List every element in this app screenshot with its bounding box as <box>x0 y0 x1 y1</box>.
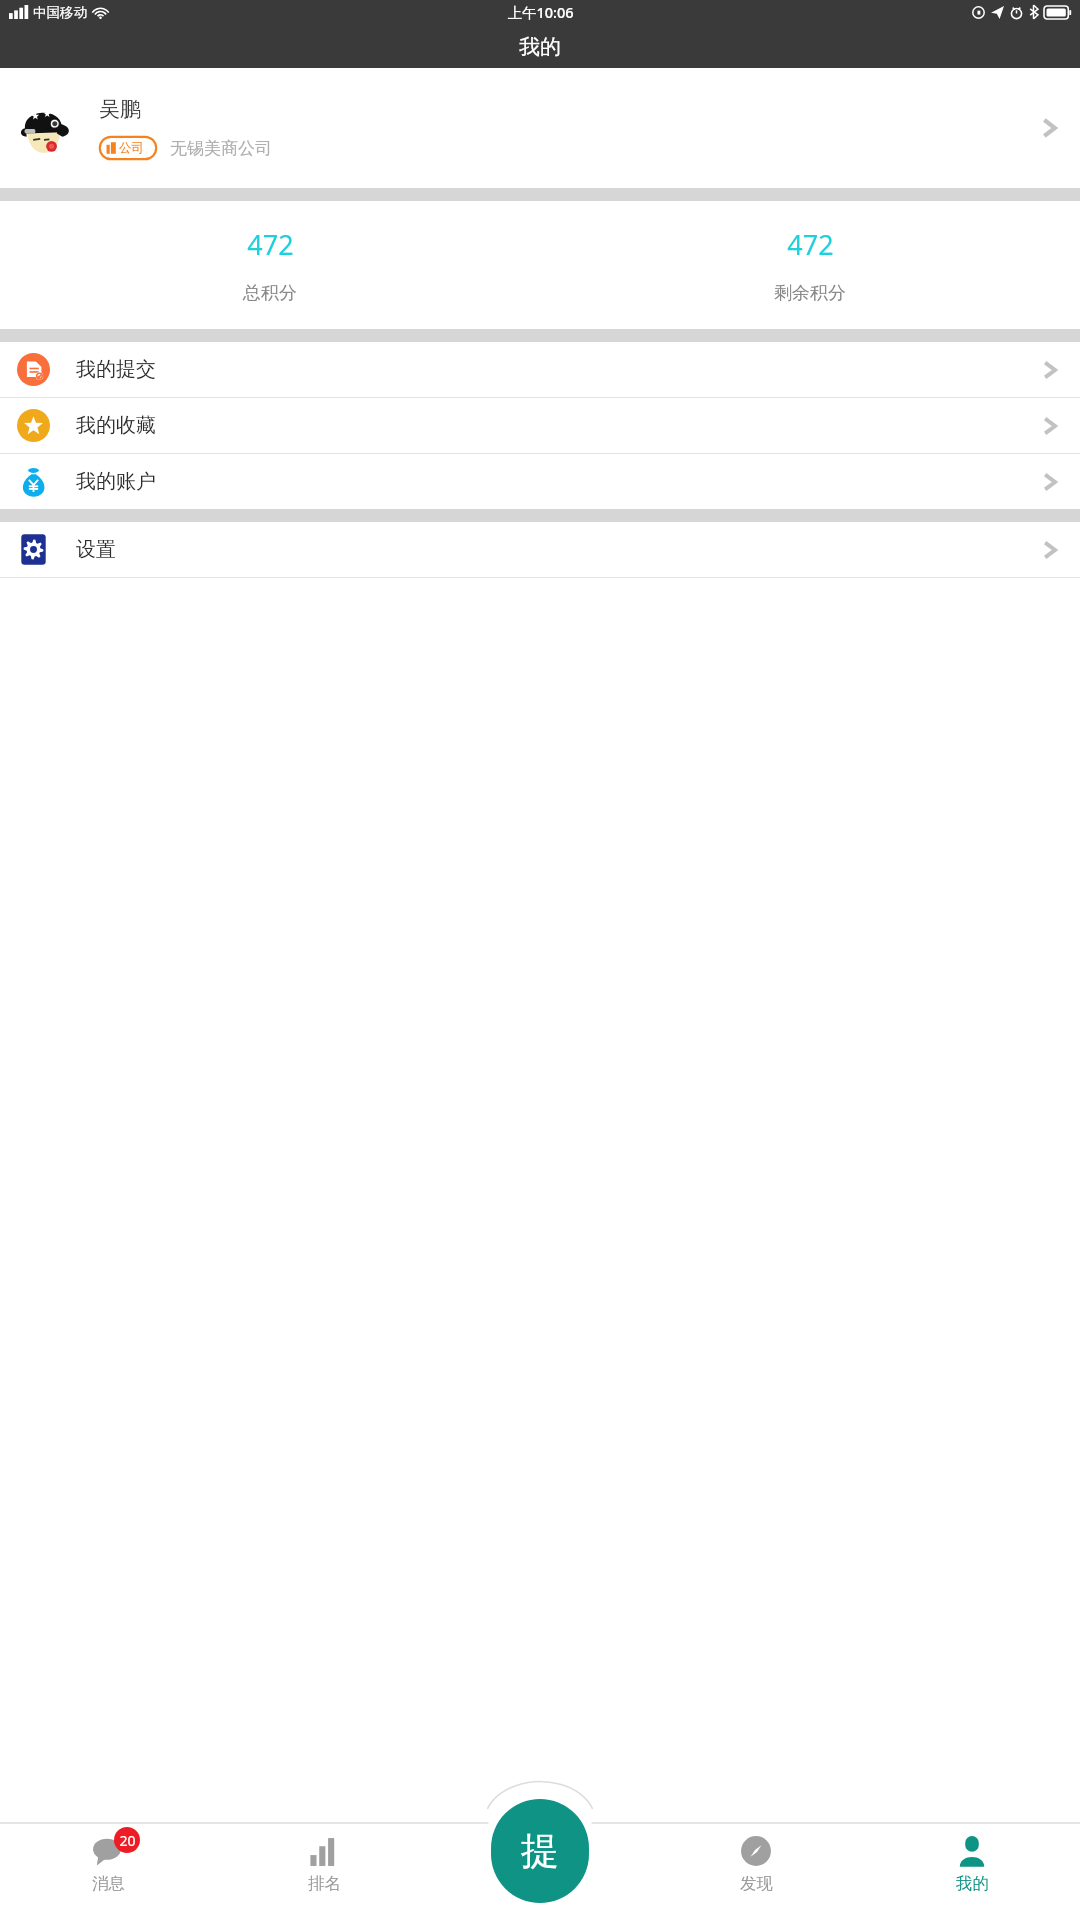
button[interactable]: 我的收藏 <box>0 398 1080 453</box>
staticText: 472 <box>247 226 294 263</box>
button[interactable]: 发现 <box>648 1823 864 1920</box>
staticText: 提 <box>521 1827 559 1875</box>
staticText: 我的提交 <box>76 357 156 382</box>
staticText: 设置 <box>76 537 116 562</box>
button[interactable]: 我的 <box>864 1823 1080 1920</box>
staticText: 中国移动 <box>33 4 87 21</box>
button[interactable]: 设置 <box>0 522 1080 577</box>
staticText: 我的 <box>519 34 561 60</box>
button[interactable]: 排名 <box>216 1823 432 1920</box>
button[interactable]: 472 <box>540 201 1080 329</box>
staticText: 消息 <box>92 1873 125 1894</box>
button[interactable]: 吴鹏 <box>0 68 1080 188</box>
staticText: 总积分 <box>243 282 297 305</box>
staticText: 我的收藏 <box>76 413 156 438</box>
staticText: 472 <box>787 226 834 263</box>
staticText: 公司 <box>119 140 144 156</box>
staticText: 我的账户 <box>76 469 156 494</box>
button[interactable]: 我的提交 <box>0 342 1080 397</box>
staticText: 剩余积分 <box>774 282 846 305</box>
button[interactable]: 我的账户 <box>0 454 1080 509</box>
staticText: 上午10:06 <box>507 2 574 22</box>
button[interactable]: 20 <box>0 1823 216 1920</box>
staticText: 20 <box>119 1831 136 1850</box>
staticText: 排名 <box>308 1873 341 1894</box>
staticText: 吴鹏 <box>99 96 141 122</box>
staticText: 无锡美商公司 <box>170 138 272 159</box>
staticText: 发现 <box>740 1873 773 1894</box>
button[interactable]: 提 <box>491 1799 589 1903</box>
staticText: 我的 <box>956 1873 989 1894</box>
button[interactable]: 472 <box>0 201 540 329</box>
